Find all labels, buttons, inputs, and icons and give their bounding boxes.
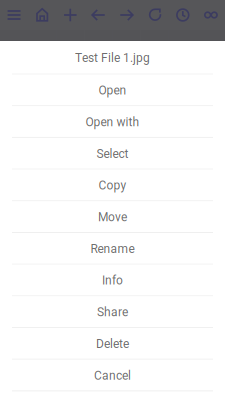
staticText: Rename: [90, 242, 134, 256]
button[interactable]: Rename: [0, 233, 225, 265]
button[interactable]: Select: [0, 138, 225, 170]
staticText: Delete: [96, 337, 129, 351]
staticText: Info: [102, 273, 123, 288]
button[interactable]: Bookmarks: [197, 0, 225, 41]
button[interactable]: Home: [28, 0, 56, 41]
button[interactable]: New: [56, 0, 84, 41]
button[interactable]: Share: [0, 296, 225, 328]
button[interactable]: Menu: [0, 0, 28, 41]
button[interactable]: Back: [84, 0, 112, 41]
staticText: Open with: [85, 115, 139, 129]
button[interactable]: Delete: [0, 328, 225, 360]
button[interactable]: Info: [0, 265, 225, 296]
staticText: Cancel: [94, 368, 131, 383]
staticText: Share: [97, 305, 128, 319]
staticText: Move: [98, 210, 127, 224]
button[interactable]: Open with: [0, 106, 225, 138]
staticText: Test File 1.jpg: [75, 51, 150, 65]
button[interactable]: Copy: [0, 170, 225, 201]
button[interactable]: Open: [0, 75, 225, 106]
staticText: Copy: [98, 178, 126, 192]
staticText: Select: [96, 147, 128, 161]
button[interactable]: Test File 1.jpg: [0, 41, 225, 75]
button[interactable]: Move: [0, 201, 225, 233]
button[interactable]: Cancel: [0, 360, 225, 391]
button[interactable]: History: [169, 0, 197, 41]
button[interactable]: Reload: [141, 0, 169, 41]
staticText: Open: [98, 83, 126, 97]
button[interactable]: Forward: [112, 0, 141, 41]
